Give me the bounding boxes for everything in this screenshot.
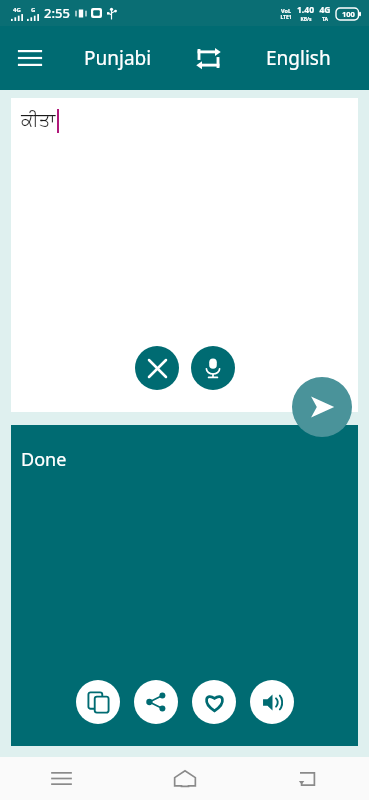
- staticText: 1.40: [297, 4, 314, 16]
- button[interactable]: Recents: [0, 757, 123, 800]
- button[interactable]: Favourite: [192, 680, 236, 724]
- staticText: VoL: [281, 7, 291, 14]
- button[interactable]: Swap languages: [182, 32, 234, 84]
- button[interactable]: Speak: [250, 680, 294, 724]
- staticText: 2:55: [44, 4, 70, 22]
- staticText: KB/s: [300, 16, 312, 23]
- button[interactable]: Voice input: [191, 346, 235, 390]
- button[interactable]: Share: [134, 680, 178, 724]
- button[interactable]: Home: [123, 757, 246, 800]
- staticText: Done: [21, 447, 67, 472]
- button[interactable]: Menu: [6, 34, 54, 82]
- staticText: 4G: [319, 4, 331, 16]
- button[interactable]: Clear text: [135, 346, 179, 390]
- button[interactable]: Back: [246, 757, 369, 800]
- button[interactable]: Copy: [76, 680, 120, 724]
- button[interactable]: English: [256, 39, 341, 77]
- staticText: G: [31, 6, 36, 14]
- staticText: 100: [342, 9, 355, 19]
- button[interactable]: Punjabi: [74, 39, 162, 77]
- staticText: ਕੀਤਾ: [21, 112, 56, 130]
- staticText: English: [266, 45, 331, 71]
- staticText: Punjabi: [84, 45, 152, 71]
- staticText: 4G: [13, 6, 21, 14]
- staticText: TA: [322, 16, 328, 23]
- button[interactable]: Translate: [292, 377, 352, 437]
- staticText: LTE1: [280, 14, 292, 21]
